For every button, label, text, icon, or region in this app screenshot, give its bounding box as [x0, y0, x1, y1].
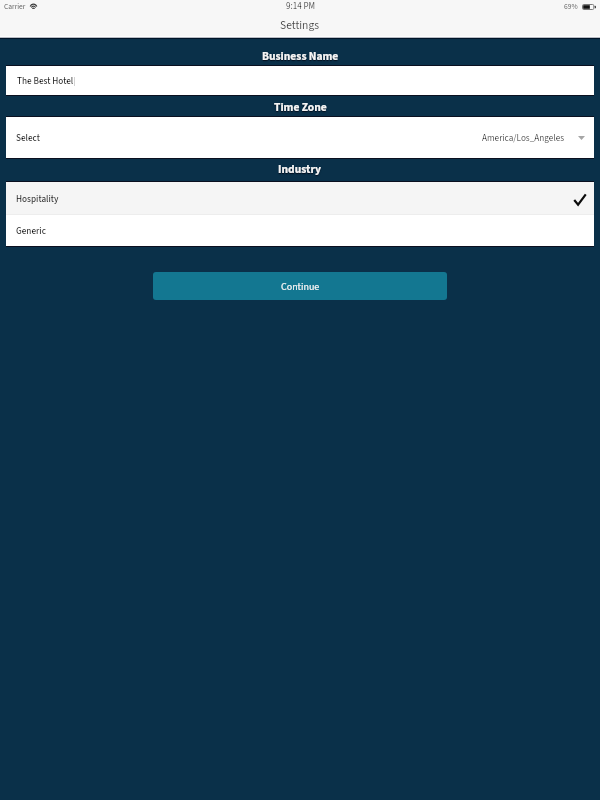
button[interactable]: The Best Hotel — [6, 66, 594, 95]
button[interactable]: Generic — [6, 215, 594, 246]
button[interactable]: Continue — [153, 272, 447, 300]
staticText: Carrier — [4, 1, 26, 12]
staticText: 9:14 PM — [286, 0, 316, 13]
other: Wi-Fi — [30, 4, 37, 10]
staticText: Time Zone — [274, 99, 327, 115]
staticText: 69% — [564, 1, 578, 12]
staticText: Settings — [280, 17, 320, 33]
staticText: The Best Hotel — [17, 75, 74, 88]
staticText: Select — [16, 132, 40, 145]
staticText: America/Los_Angeles — [482, 132, 565, 145]
button[interactable]: Select — [6, 117, 594, 158]
staticText: Generic — [16, 225, 46, 238]
staticText: Business Name — [262, 48, 339, 64]
button[interactable]: Hospitality — [6, 182, 594, 214]
other: Battery — [582, 4, 596, 10]
other: Selected — [574, 194, 586, 205]
staticText: Hospitality — [16, 193, 59, 206]
staticText: Industry — [278, 161, 322, 177]
staticText: Continue — [281, 280, 320, 294]
other: Expand — [578, 136, 585, 140]
